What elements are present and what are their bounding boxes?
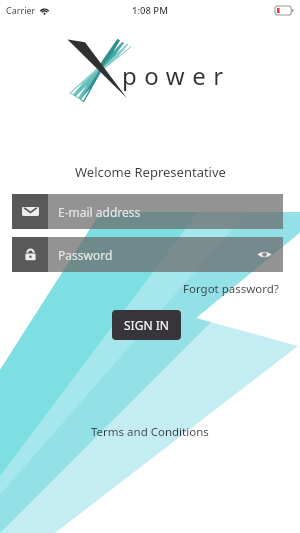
staticText: power: [122, 59, 231, 92]
button[interactable]: Forgot password?: [183, 281, 279, 297]
button[interactable]: SIGN IN: [112, 310, 181, 340]
staticText: Password: [58, 247, 113, 263]
staticText: E-mail address: [58, 204, 141, 220]
staticText: SIGN IN: [124, 317, 169, 333]
other: Show password: [257, 249, 272, 260]
staticText: Forgot password?: [183, 281, 279, 297]
button[interactable]: E-mail address: [12, 194, 283, 229]
staticText: Welcome Representative: [75, 163, 226, 181]
staticText: Carrier: [6, 4, 36, 16]
button[interactable]: Password: [12, 237, 283, 272]
staticText: 1:08 PM: [132, 4, 168, 17]
button[interactable]: Terms and Conditions: [91, 424, 209, 440]
